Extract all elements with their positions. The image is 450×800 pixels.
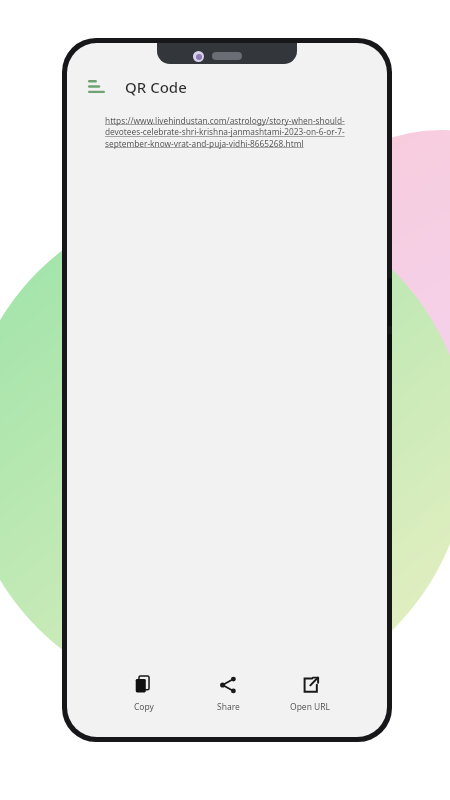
button[interactable]: Open URL [281, 672, 339, 715]
staticText: Copy [134, 701, 154, 713]
button[interactable]: Copy [115, 672, 173, 715]
staticText: Share [217, 701, 240, 713]
button[interactable]: Menu [81, 72, 111, 102]
button[interactable]: Share [199, 672, 257, 715]
staticText: Open URL [290, 701, 331, 713]
button[interactable]: https://www.livehindustan.com/astrology/… [105, 115, 349, 149]
staticText: QR Code [125, 77, 187, 97]
staticText: https://www.livehindustan.com/astrology/… [105, 115, 349, 149]
